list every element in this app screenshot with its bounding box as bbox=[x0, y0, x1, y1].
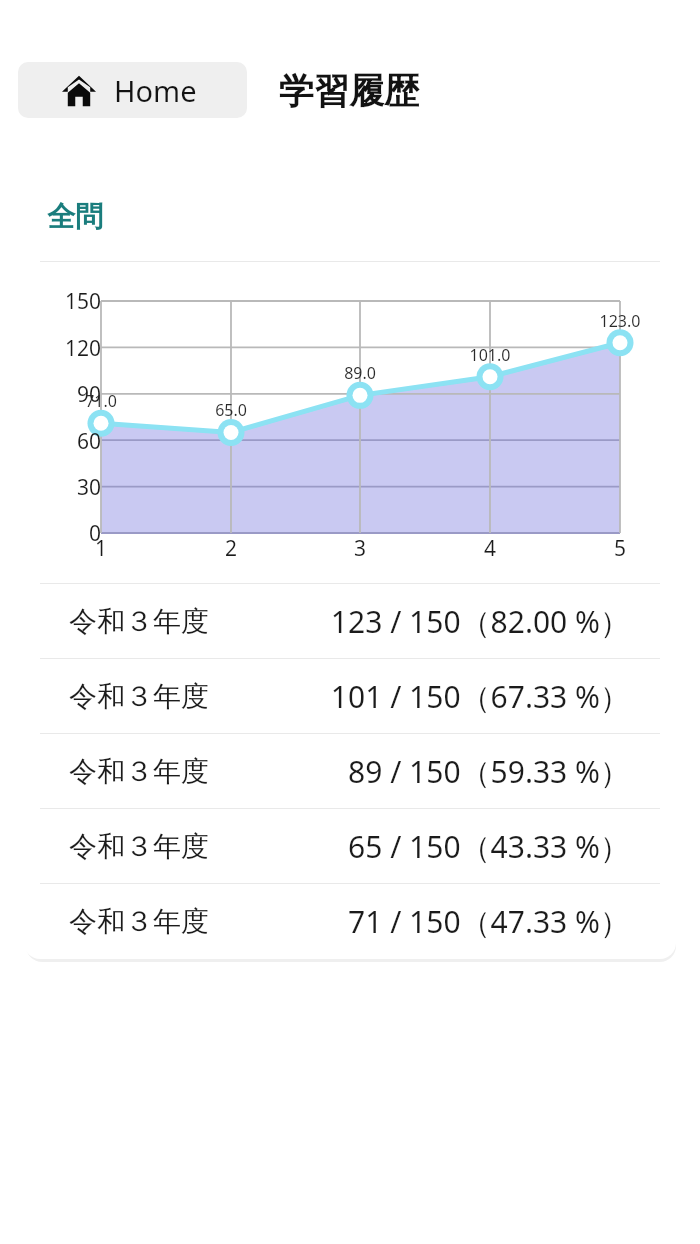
staticText: 学習履歴 bbox=[279, 69, 419, 113]
button[interactable]: 令和３年度 bbox=[24, 659, 676, 733]
staticText: 101 / 150（67.33 %） bbox=[330, 676, 630, 717]
staticText: 90 bbox=[57, 380, 101, 409]
staticText: 令和３年度 bbox=[69, 904, 209, 939]
staticText: 1 bbox=[81, 534, 121, 563]
staticText: 60 bbox=[57, 427, 101, 456]
staticText: 令和３年度 bbox=[69, 604, 209, 639]
button[interactable]: 令和３年度 bbox=[24, 884, 676, 959]
other: Home bbox=[62, 74, 96, 108]
staticText: 令和３年度 bbox=[69, 829, 209, 864]
staticText: 120 bbox=[57, 334, 101, 363]
staticText: 30 bbox=[57, 473, 101, 502]
staticText: 令和３年度 bbox=[69, 754, 209, 789]
staticText: 65.0 bbox=[201, 399, 261, 421]
staticText: 89.0 bbox=[330, 362, 390, 384]
staticText: 3 bbox=[340, 534, 380, 563]
staticText: 71 / 150（47.33 %） bbox=[348, 901, 630, 942]
staticText: 150 bbox=[57, 287, 101, 316]
button[interactable]: Home bbox=[18, 62, 247, 118]
button[interactable]: 令和３年度 bbox=[24, 584, 676, 658]
button[interactable]: 令和３年度 bbox=[24, 809, 676, 883]
staticText: 71.0 bbox=[71, 390, 131, 412]
staticText: 令和３年度 bbox=[69, 679, 209, 714]
staticText: 101.0 bbox=[460, 344, 520, 366]
staticText: 0 bbox=[57, 519, 101, 548]
staticText: Home bbox=[114, 71, 197, 110]
staticText: 65 / 150（43.33 %） bbox=[348, 826, 630, 867]
staticText: 2 bbox=[211, 534, 251, 563]
staticText: 123 / 150（82.00 %） bbox=[330, 601, 630, 642]
staticText: 4 bbox=[470, 534, 510, 563]
staticText: 5 bbox=[600, 534, 640, 563]
button[interactable]: 令和３年度 bbox=[24, 734, 676, 808]
staticText: 123.0 bbox=[590, 310, 650, 332]
staticText: 全問 bbox=[47, 199, 103, 234]
staticText: 89 / 150（59.33 %） bbox=[348, 751, 630, 792]
